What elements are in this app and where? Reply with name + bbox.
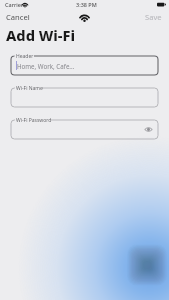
staticText: 3:38 PM: [76, 1, 97, 8]
button[interactable]: Wi-Fi Password: [11, 120, 158, 139]
button[interactable]: Header: [11, 56, 158, 75]
button[interactable]: Cancel: [0, 10, 36, 23]
staticText: Carrier: [5, 1, 24, 8]
staticText: Cancel: [6, 12, 30, 21]
button[interactable]: Wi-Fi Name: [11, 88, 158, 107]
staticText: Wi-Fi Name: [16, 85, 43, 92]
button[interactable]: Wi-Fi: [76, 11, 93, 23]
staticText: Save: [145, 12, 162, 21]
button[interactable]: Show password: [144, 125, 153, 134]
staticText: Add Wi-Fi: [6, 25, 75, 45]
button[interactable]: Save: [138, 10, 169, 23]
staticText: Wi-Fi Password: [16, 117, 52, 124]
staticText: Home, Work, Cafe...: [17, 62, 75, 70]
staticText: Header: [16, 53, 34, 60]
